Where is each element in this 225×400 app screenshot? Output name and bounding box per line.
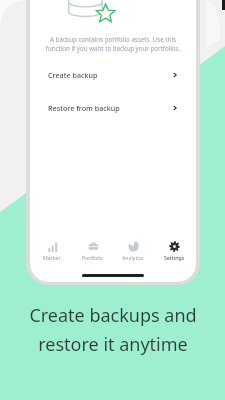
staticText: restore it anytime	[38, 332, 188, 357]
staticText: Restore from backup	[48, 103, 120, 113]
button[interactable]: Create backup	[39, 61, 187, 88]
button[interactable]: Portfolio	[74, 241, 112, 261]
button[interactable]: Market	[33, 241, 71, 261]
staticText: Create backup	[48, 70, 98, 80]
other: Settings	[169, 241, 180, 252]
staticText: Market	[43, 254, 61, 261]
button[interactable]: Settings	[155, 241, 193, 261]
other: Market	[47, 241, 58, 252]
staticText: Settings	[164, 254, 185, 261]
button[interactable]: Restore from backup	[39, 94, 187, 121]
staticText: Create backups and	[29, 303, 197, 328]
staticText: Portfolio	[82, 254, 104, 261]
other: Analytics	[128, 241, 139, 252]
button[interactable]: Analytics	[114, 241, 152, 261]
staticText: Analytics	[122, 254, 144, 261]
other: Portfolio	[88, 241, 99, 252]
staticText: A backup contains portfolio assets. Use …	[38, 35, 188, 53]
